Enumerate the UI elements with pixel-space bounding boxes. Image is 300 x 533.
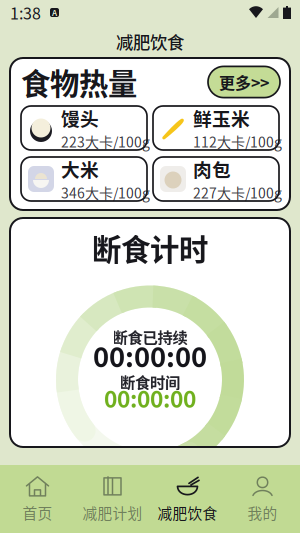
staticText: 肉包	[193, 155, 231, 182]
staticText: 食物热量	[21, 61, 137, 103]
staticText: 馒头	[61, 104, 99, 131]
button[interactable]: 鲜玉米	[153, 106, 279, 150]
staticText: 断食时间	[120, 370, 180, 393]
staticText: 346大卡/100g	[61, 182, 150, 203]
staticText: 我的	[247, 502, 277, 523]
staticText: 00:00:00	[93, 335, 207, 375]
staticText: 227大卡/100g	[193, 182, 282, 203]
button[interactable]: 肉包	[153, 157, 279, 201]
staticText: 减肥饮食	[157, 502, 217, 523]
staticText: A	[52, 7, 57, 18]
staticText: 减肥计划	[82, 502, 142, 523]
button[interactable]: 我的	[225, 465, 300, 533]
staticText: 减肥饮食	[116, 29, 184, 54]
button[interactable]: 更多>>	[208, 66, 280, 98]
button[interactable]: 减肥计划	[75, 465, 150, 533]
staticText: 112大卡/100g	[193, 131, 282, 152]
staticText: 大米	[61, 155, 99, 182]
staticText: 更多>>	[219, 70, 269, 94]
staticText: 首页	[22, 502, 52, 523]
button[interactable]: 减肥饮食	[150, 465, 225, 533]
staticText: 断食计时	[92, 226, 208, 269]
staticText: 00:00:00	[104, 381, 196, 414]
button[interactable]: 首页	[0, 465, 75, 533]
staticText: 223大卡/100g	[61, 131, 150, 152]
button[interactable]: 大米	[21, 157, 147, 201]
staticText: 鲜玉米	[193, 104, 250, 131]
staticText: 断食已持续	[112, 325, 187, 348]
button[interactable]: 馒头	[21, 106, 147, 150]
staticText: 1:38	[10, 1, 41, 24]
